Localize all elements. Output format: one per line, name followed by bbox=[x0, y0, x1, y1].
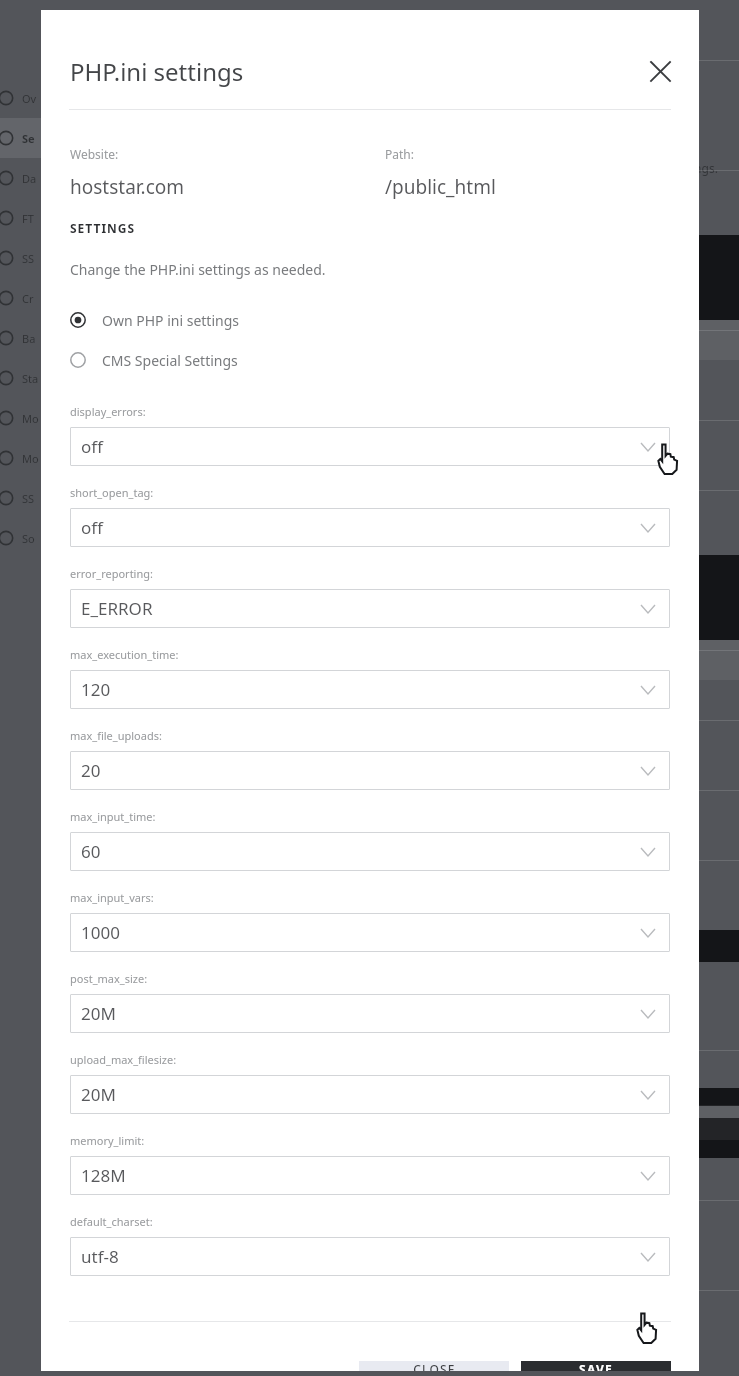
staticText: 20M bbox=[81, 1002, 116, 1025]
staticText: off bbox=[81, 516, 103, 539]
button[interactable]: Cr bbox=[0, 278, 41, 318]
button[interactable]: Ba bbox=[0, 318, 41, 358]
button[interactable]: Sta bbox=[0, 358, 41, 398]
staticText: SAVE bbox=[579, 1361, 613, 1371]
button[interactable]: E_ERROR bbox=[70, 589, 670, 628]
staticText: display_errors: bbox=[70, 404, 146, 419]
staticText: Se bbox=[22, 131, 35, 146]
staticText: FT bbox=[22, 211, 34, 226]
staticText: post_max_size: bbox=[70, 971, 148, 986]
staticText: Own PHP ini settings bbox=[102, 311, 239, 330]
staticText: utf-8 bbox=[81, 1245, 119, 1268]
button[interactable]: Own PHP ini settings bbox=[70, 304, 699, 336]
staticText: short_open_tag: bbox=[70, 485, 154, 500]
staticText: 128M bbox=[81, 1164, 126, 1187]
staticText: CMS Special Settings bbox=[102, 351, 238, 370]
button[interactable]: SS bbox=[0, 478, 41, 518]
staticText: off bbox=[81, 435, 103, 458]
button[interactable]: 20M bbox=[70, 1075, 670, 1114]
staticText: Mo bbox=[22, 411, 39, 426]
button[interactable]: 20 bbox=[70, 751, 670, 790]
button[interactable]: 20M bbox=[70, 994, 670, 1033]
staticText: SETTINGS bbox=[70, 220, 136, 236]
button[interactable]: Mo bbox=[0, 438, 41, 478]
staticText: error_reporting: bbox=[70, 566, 153, 581]
staticText: 20M bbox=[81, 1083, 116, 1106]
button[interactable]: Se bbox=[0, 118, 41, 158]
button[interactable]: CMS Special Settings bbox=[70, 344, 699, 376]
staticText: /public_html bbox=[385, 174, 496, 200]
button[interactable]: SS bbox=[0, 238, 41, 278]
button[interactable]: SAVE bbox=[521, 1361, 671, 1371]
staticText: Sta bbox=[22, 371, 39, 386]
staticText: hoststar.com bbox=[70, 174, 185, 200]
button[interactable]: FT bbox=[0, 198, 41, 238]
staticText: PHP.ini settings bbox=[70, 55, 244, 88]
button[interactable]: Mo bbox=[0, 398, 41, 438]
button[interactable]: utf-8 bbox=[70, 1237, 670, 1276]
staticText: upload_max_filesize: bbox=[70, 1052, 177, 1067]
staticText: 60 bbox=[81, 840, 101, 863]
staticText: max_file_uploads: bbox=[70, 728, 162, 743]
staticText: E_ERROR bbox=[81, 597, 153, 620]
staticText: max_input_vars: bbox=[70, 890, 154, 905]
staticText: So bbox=[22, 531, 35, 546]
button[interactable]: 128M bbox=[70, 1156, 670, 1195]
staticText: SS bbox=[22, 491, 35, 506]
staticText: max_input_time: bbox=[70, 809, 156, 824]
staticText: 20 bbox=[81, 759, 101, 782]
button[interactable]: Close bbox=[643, 54, 677, 88]
staticText: default_charset: bbox=[70, 1214, 153, 1229]
button[interactable]: Ov bbox=[0, 78, 41, 118]
button[interactable]: off bbox=[70, 427, 670, 466]
staticText: Website: bbox=[70, 146, 119, 162]
staticText: SS bbox=[22, 251, 35, 266]
staticText: 1000 bbox=[81, 921, 120, 944]
staticText: Cr bbox=[22, 291, 34, 306]
staticText: Change the PHP.ini settings as needed. bbox=[70, 260, 326, 279]
button[interactable]: 1000 bbox=[70, 913, 670, 952]
staticText: Ba bbox=[22, 331, 36, 346]
staticText: ings. bbox=[691, 160, 718, 176]
button[interactable]: off bbox=[70, 508, 670, 547]
staticText: Ov bbox=[22, 91, 37, 106]
staticText: Path: bbox=[385, 146, 414, 162]
staticText: CLOSE bbox=[413, 1361, 456, 1371]
button[interactable]: Da bbox=[0, 158, 41, 198]
staticText: Da bbox=[22, 171, 37, 186]
button[interactable]: 60 bbox=[70, 832, 670, 871]
staticText: 120 bbox=[81, 678, 111, 701]
staticText: Mo bbox=[22, 451, 39, 466]
button[interactable]: CLOSE bbox=[359, 1361, 509, 1371]
button[interactable]: So bbox=[0, 518, 41, 558]
staticText: max_execution_time: bbox=[70, 647, 179, 662]
button[interactable]: 120 bbox=[70, 670, 670, 709]
staticText: memory_limit: bbox=[70, 1133, 145, 1148]
